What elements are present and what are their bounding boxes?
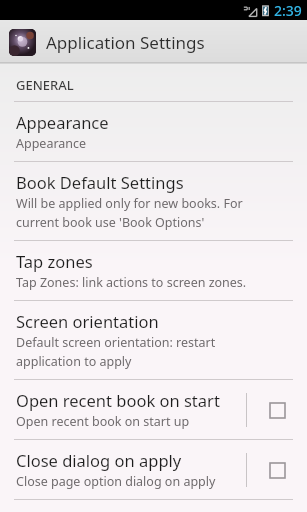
staticText: Close page option dialog on apply <box>16 473 216 490</box>
staticText: current book use 'Book Options' <box>16 214 205 231</box>
staticText: GENERAL <box>16 76 74 94</box>
button[interactable]: Book Default Settings <box>0 162 307 240</box>
staticText: Open recent book on start <box>16 389 220 411</box>
button[interactable]: Appearance <box>0 102 307 161</box>
staticText: Close dialog on apply <box>16 449 182 471</box>
staticText: Default screen orientation: restart <box>16 334 216 351</box>
staticText: Will be applied only for new books. For <box>16 195 243 212</box>
staticText: Open recent book on start up <box>16 413 190 430</box>
staticText: Application Settings <box>46 31 205 54</box>
button[interactable]: Close dialog on apply <box>0 440 307 499</box>
staticText: Appearance <box>16 111 109 133</box>
staticText: 2:39 <box>274 1 302 20</box>
button[interactable]: Open recent book on start <box>247 387 307 433</box>
staticText: Screen orientation <box>16 310 159 332</box>
button[interactable]: Screen orientation <box>0 301 307 379</box>
staticText: Book Default Settings <box>16 171 184 193</box>
button[interactable]: Tap zones <box>0 241 307 300</box>
staticText: Tap Zones: link actions to screen zones. <box>16 274 247 291</box>
button[interactable]: Open recent book on start <box>0 380 307 439</box>
staticText: Tap zones <box>16 250 93 272</box>
staticText: application to apply <box>16 353 132 370</box>
button[interactable]: Close dialog on apply <box>247 447 307 493</box>
staticText: Appearance <box>16 135 87 152</box>
